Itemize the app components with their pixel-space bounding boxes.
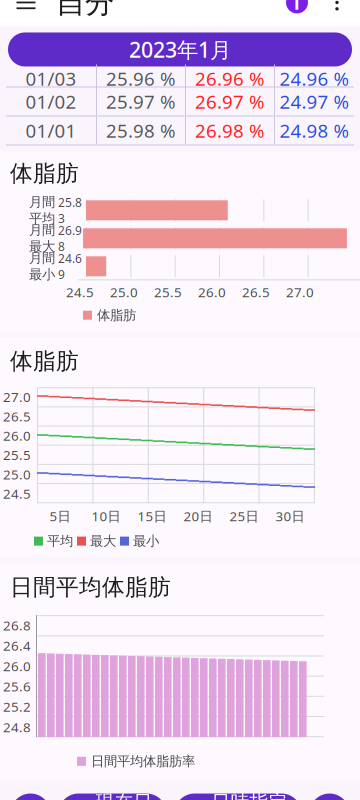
- staticText: 25日: [229, 507, 258, 525]
- staticText: 最大: [90, 533, 116, 549]
- staticText: 2023年1月: [129, 35, 231, 64]
- staticText: 25.6: [3, 677, 31, 695]
- button[interactable]: Information: [276, 0, 318, 26]
- staticText: 26.0: [3, 427, 31, 444]
- staticText: 27.0: [3, 388, 31, 406]
- staticText: 27.0: [286, 283, 314, 301]
- staticText: 現在日時記: [95, 791, 152, 800]
- staticText: 24.5: [3, 485, 31, 502]
- staticText: 日間平均体脂肪: [10, 573, 171, 601]
- staticText: 24.8: [3, 718, 31, 736]
- button[interactable]: More options: [318, 0, 356, 26]
- staticText: 体脂肪: [10, 159, 79, 187]
- button[interactable]: Menu: [4, 0, 48, 26]
- staticText: i: [294, 0, 300, 15]
- staticText: 月間最小: [29, 250, 55, 283]
- staticText: 5日: [49, 507, 70, 525]
- staticText: 26.8: [3, 616, 31, 634]
- staticText: 平均: [47, 533, 73, 549]
- staticText: 01/02: [25, 89, 76, 114]
- staticText: 25.5: [3, 446, 31, 464]
- staticText: 月間平均: [29, 194, 55, 227]
- staticText: 自分: [56, 0, 114, 20]
- button[interactable]: +: [58, 793, 166, 800]
- button[interactable]: +: [174, 793, 301, 800]
- staticText: 30日: [275, 507, 304, 525]
- staticText: 26.98: [58, 222, 82, 254]
- staticText: 26.5: [3, 407, 31, 425]
- staticText: 25.96 %: [106, 66, 176, 91]
- staticText: 10日: [91, 507, 120, 525]
- staticText: 25.0: [3, 465, 31, 483]
- staticText: 01/03: [25, 66, 76, 91]
- staticText: 月間最大: [29, 222, 55, 255]
- staticText: 体脂肪: [97, 307, 136, 323]
- staticText: 24.5: [66, 283, 94, 301]
- staticText: 最小: [133, 533, 159, 549]
- staticText: 25.0: [110, 283, 138, 301]
- staticText: 26.97 %: [195, 89, 265, 114]
- staticText: 25.2: [3, 698, 31, 715]
- staticText: 15日: [137, 507, 166, 525]
- staticText: 24.98 %: [279, 118, 349, 143]
- staticText: 24.96 %: [279, 66, 349, 91]
- staticText: 01/01: [25, 118, 76, 143]
- staticText: 26.0: [198, 283, 226, 301]
- staticText: 25.97 %: [106, 89, 176, 114]
- staticText: 26.4: [3, 637, 31, 654]
- staticText: 25.83: [58, 194, 82, 226]
- staticText: 26.0: [3, 657, 31, 675]
- button[interactable]: Next: [309, 793, 349, 800]
- staticText: 日間平均体脂肪率: [91, 753, 195, 770]
- button[interactable]: 2023年1月: [8, 32, 352, 66]
- staticText: 24.97 %: [279, 89, 349, 114]
- staticText: 体脂肪: [10, 347, 79, 375]
- staticText: 20日: [183, 507, 212, 525]
- staticText: 26.96 %: [195, 66, 265, 91]
- staticText: 26.5: [242, 283, 270, 301]
- staticText: 24.69: [58, 250, 82, 282]
- staticText: 26.98 %: [195, 118, 265, 143]
- staticText: 25.98 %: [106, 118, 176, 143]
- staticText: 日時指定記: [211, 791, 287, 800]
- staticText: 25.5: [154, 283, 182, 301]
- button[interactable]: Previous: [10, 793, 50, 800]
